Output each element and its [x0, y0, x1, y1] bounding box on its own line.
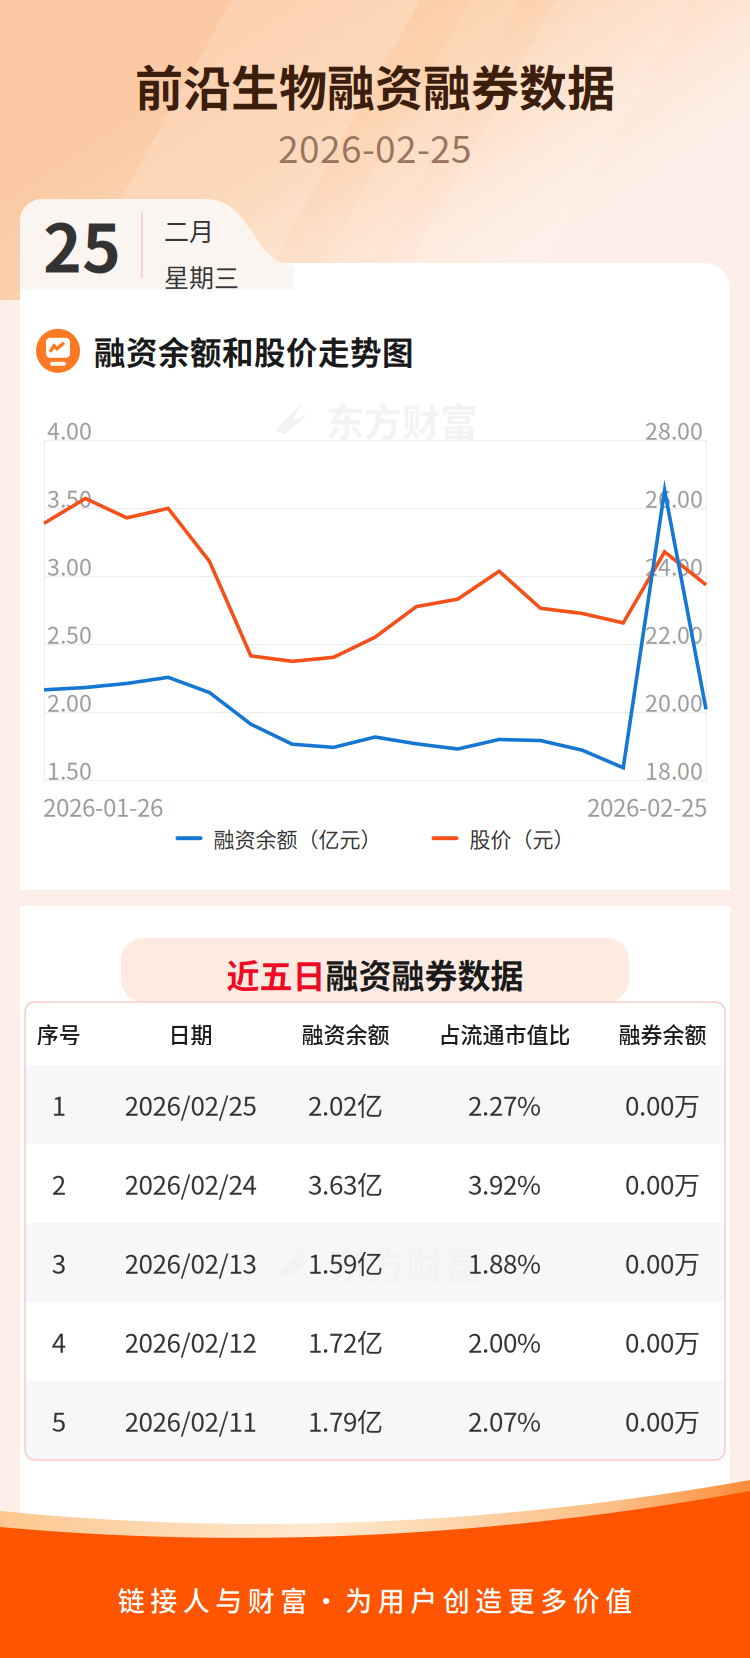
staticText: 融资余额（亿元）	[213, 823, 381, 853]
staticText: 2.50	[47, 617, 92, 650]
staticText: 1.79亿	[308, 1402, 383, 1439]
staticText: 2.27%	[468, 1086, 541, 1123]
staticText: 与	[215, 1580, 242, 1619]
staticText: 融券余额	[618, 1018, 706, 1049]
staticText: 2026/02/25	[124, 1086, 256, 1123]
staticText: 值	[605, 1580, 632, 1619]
staticText: 18.00	[645, 753, 703, 786]
staticText: 22.00	[645, 617, 703, 650]
staticText: 2.07%	[468, 1402, 541, 1439]
staticText: 二月	[164, 212, 214, 248]
staticText: 价	[573, 1580, 600, 1619]
staticText: 2026/02/13	[124, 1244, 256, 1281]
staticText: 多	[540, 1580, 567, 1619]
staticText: 链	[118, 1580, 145, 1619]
staticText: 造	[475, 1580, 502, 1619]
staticText: 2.00	[47, 685, 92, 718]
staticText: 26.00	[645, 481, 703, 514]
staticText: 融资余额和股价走势图	[94, 328, 414, 374]
staticText: 20.00	[645, 685, 703, 718]
staticText: 0.00万	[625, 1323, 700, 1360]
staticText: 25	[43, 196, 121, 292]
staticText: 接	[150, 1580, 177, 1619]
staticText: 3	[52, 1244, 66, 1281]
staticText: 2	[52, 1165, 66, 1202]
staticText: 1.88%	[468, 1244, 541, 1281]
staticText: 户	[410, 1580, 437, 1619]
staticText: 3.50	[47, 481, 92, 514]
staticText: 28.00	[645, 413, 703, 446]
staticText: 2026/02/11	[124, 1402, 256, 1439]
staticText: 24.00	[645, 549, 703, 582]
staticText: 2026-02-25	[278, 120, 472, 174]
staticText: 2026-01-26	[43, 789, 163, 824]
staticText: 近五日	[226, 950, 325, 998]
staticText: 东方财富	[326, 392, 478, 447]
staticText: 2026-02-25	[587, 789, 707, 824]
staticText: 星期三	[164, 258, 239, 294]
staticText: ·	[313, 1580, 340, 1619]
staticText: 0.00万	[625, 1244, 700, 1281]
staticText: 东方财富	[330, 1235, 482, 1290]
staticText: 2026/02/24	[124, 1165, 256, 1202]
staticText: 3.63亿	[308, 1165, 383, 1202]
staticText: 1.50	[47, 753, 92, 786]
staticText: 更	[508, 1580, 535, 1619]
staticText: 2.00%	[468, 1323, 541, 1360]
staticText: 财	[248, 1580, 275, 1619]
staticText: 0.00万	[625, 1402, 700, 1439]
staticText: 人	[183, 1580, 210, 1619]
staticText: 序号	[37, 1018, 81, 1049]
staticText: 3.00	[47, 549, 92, 582]
staticText: 0.00万	[625, 1165, 700, 1202]
staticText: 1.59亿	[308, 1244, 383, 1281]
staticText: 日期	[168, 1018, 212, 1049]
staticText: 为	[345, 1580, 372, 1619]
staticText: 4	[52, 1323, 66, 1360]
staticText: 用	[378, 1580, 405, 1619]
staticText: 4.00	[47, 413, 92, 446]
staticText: 前沿生物融资融券数据	[135, 50, 615, 119]
staticText: 3.92%	[468, 1165, 541, 1202]
staticText: 富	[280, 1580, 307, 1619]
staticText: 1	[52, 1086, 66, 1123]
staticText: 融资融券数据	[325, 950, 523, 998]
staticText: 1.72亿	[308, 1323, 383, 1360]
staticText: 5	[52, 1402, 66, 1439]
staticText: 2.02亿	[308, 1086, 383, 1123]
staticText: 融资余额	[301, 1018, 389, 1049]
staticText: 创	[443, 1580, 470, 1619]
staticText: 股价（元）	[469, 823, 574, 853]
staticText: 占流通市值比	[438, 1018, 570, 1049]
staticText: 2026/02/12	[124, 1323, 256, 1360]
staticText: 0.00万	[625, 1086, 700, 1123]
